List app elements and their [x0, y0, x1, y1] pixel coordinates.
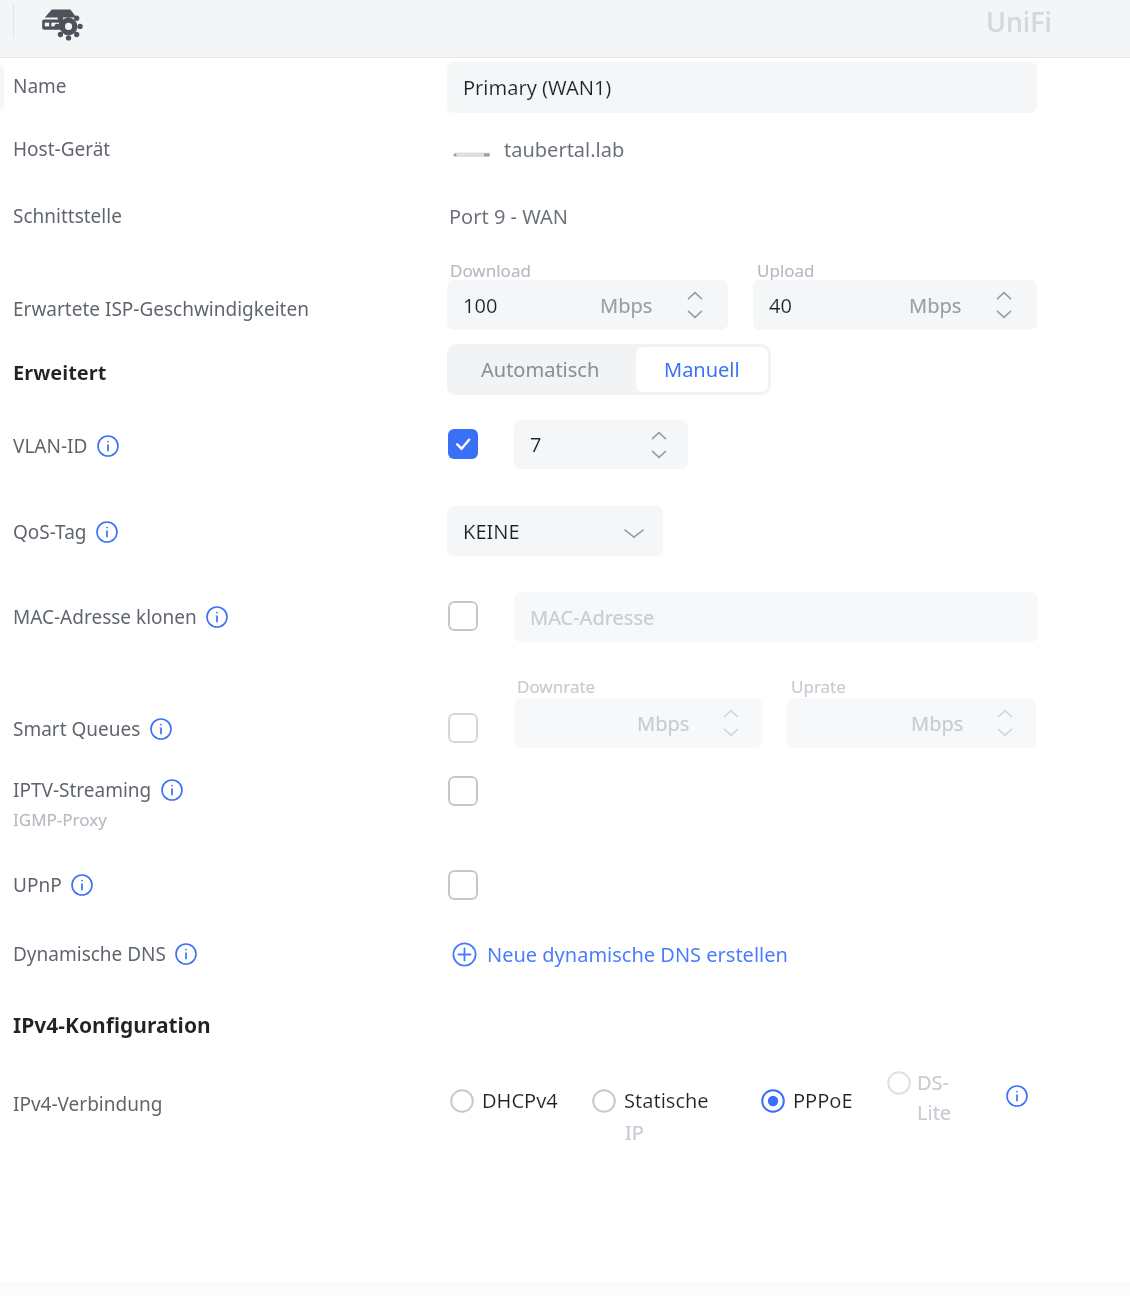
button[interactable]: Info [206, 606, 228, 628]
staticText: Download [450, 259, 531, 282]
button[interactable]: KEINE [447, 506, 663, 556]
staticText: 100 [463, 292, 498, 319]
staticText: PPPoE [793, 1087, 853, 1114]
button[interactable]: Option [449, 1087, 558, 1114]
staticText: Dynamische DNS [13, 941, 166, 967]
button[interactable]: Primary (WAN1) [447, 62, 1037, 113]
button[interactable]: Increment or decrement [718, 703, 744, 743]
staticText: Name [13, 73, 67, 99]
button[interactable]: Info [150, 718, 172, 740]
button[interactable]: Mbps [514, 698, 762, 748]
button[interactable]: Info [97, 435, 119, 457]
button[interactable]: 100 [447, 280, 728, 330]
button[interactable]: Automatisch [447, 344, 633, 395]
button[interactable]: 40 [753, 280, 1037, 330]
staticText: Upload [757, 259, 815, 282]
button[interactable]: Info [175, 943, 197, 965]
button[interactable]: Unchecked [448, 776, 478, 806]
staticText: QoS-Tag [13, 519, 87, 545]
staticText: UniFi [986, 3, 1052, 40]
staticText: VLAN-ID [13, 433, 88, 459]
button[interactable]: Checked [448, 429, 478, 459]
button[interactable]: Increment or decrement [991, 285, 1017, 325]
button[interactable]: Mbps [787, 698, 1036, 748]
staticText: Mbps [909, 292, 962, 319]
staticText: Manuell [664, 356, 740, 383]
button[interactable]: Option [886, 1069, 950, 1096]
staticText: Mbps [600, 292, 653, 319]
staticText: KEINE [463, 518, 520, 545]
staticText: taubertal.lab [504, 136, 625, 163]
staticText: Mbps [911, 710, 964, 737]
button[interactable]: Selected option [760, 1087, 853, 1114]
staticText: Lite [917, 1099, 952, 1126]
staticText: Statische [624, 1087, 709, 1114]
staticText: Smart Queues [13, 716, 141, 742]
staticText: Automatisch [481, 356, 600, 383]
staticText: DHCPv4 [482, 1087, 558, 1114]
staticText: MAC-Adresse klonen [13, 604, 197, 630]
staticText: DS- [917, 1069, 950, 1096]
button[interactable]: Option [886, 1070, 912, 1096]
staticText: Erwartete ISP-Geschwindigkeiten [13, 296, 309, 322]
staticText: Uprate [791, 675, 846, 698]
button[interactable]: Option [591, 1088, 617, 1114]
button[interactable]: Option [591, 1087, 709, 1114]
staticText: Primary (WAN1) [463, 74, 612, 101]
button[interactable]: Selected option [760, 1088, 786, 1114]
staticText: Neue dynamische DNS erstellen [487, 941, 788, 968]
button[interactable]: Option [449, 1088, 475, 1114]
staticText: 40 [769, 292, 792, 319]
button[interactable]: Info [96, 521, 118, 543]
staticText: IPv4-Verbindung [13, 1091, 163, 1117]
staticText: IPv4-Konfiguration [13, 1011, 211, 1040]
button[interactable]: Unchecked [448, 870, 478, 900]
button[interactable]: Info [161, 779, 183, 801]
button[interactable]: Increment or decrement [992, 703, 1018, 743]
button[interactable]: Increment or decrement [646, 425, 672, 465]
button[interactable]: Unchecked [448, 713, 478, 743]
button[interactable]: MAC-Adresse [514, 592, 1038, 642]
button[interactable]: Unchecked [448, 601, 478, 631]
staticText: Mbps [637, 710, 690, 737]
button[interactable]: Neue dynamische DNS erstellen [450, 938, 790, 971]
button[interactable]: Info [71, 874, 93, 896]
staticText: Erweitert [13, 359, 107, 386]
staticText: Downrate [517, 675, 596, 698]
staticText: IPTV-Streaming [13, 777, 152, 803]
button[interactable]: Gateway settings [36, 6, 80, 40]
button[interactable]: Manuell [636, 347, 768, 392]
staticText: 7 [530, 431, 542, 458]
staticText: Port 9 - WAN [449, 203, 568, 230]
staticText: Schnittstelle [13, 203, 122, 229]
staticText: IGMP-Proxy [13, 808, 107, 831]
button[interactable]: Info [1006, 1085, 1028, 1107]
staticText: Host-Gerät [13, 136, 111, 162]
staticText: UPnP [13, 872, 62, 898]
button[interactable]: 7 [514, 420, 688, 469]
button[interactable]: Increment or decrement [682, 285, 708, 325]
staticText: IP [625, 1119, 644, 1146]
staticText: MAC-Adresse [530, 604, 655, 631]
